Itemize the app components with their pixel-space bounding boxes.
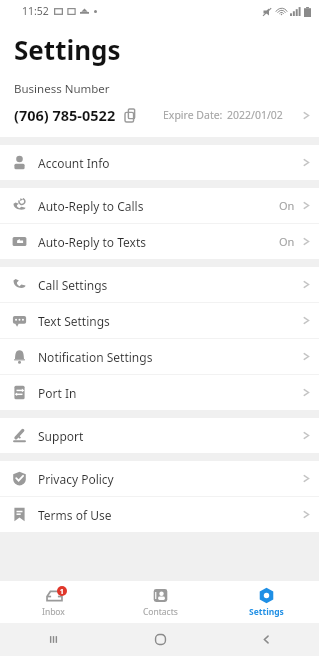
staticText: 11:52 (22, 4, 49, 18)
staticText: Terms of Use (38, 507, 112, 523)
staticText: Business Number (14, 81, 110, 97)
button[interactable]: Privacy Policy (0, 461, 319, 496)
button[interactable]: Text Settings (0, 303, 319, 338)
staticText: Port In (38, 385, 77, 401)
button[interactable]: Recent apps (0, 623, 107, 656)
button[interactable]: Notification Settings (0, 339, 319, 374)
staticText: Support (38, 428, 84, 444)
staticText: Account Info (38, 155, 110, 171)
button[interactable]: Terms of Use (0, 497, 319, 532)
button[interactable]: Auto-Reply to Calls (0, 188, 319, 223)
staticText: Privacy Policy (38, 471, 114, 487)
staticText: Auto-Reply to Texts (38, 234, 146, 250)
staticText: Call Settings (38, 277, 108, 293)
staticText: Auto-Reply to Calls (38, 198, 144, 214)
button[interactable]: Copy number (121, 105, 141, 125)
button[interactable]: Back (213, 623, 319, 656)
button[interactable]: Call Settings (0, 267, 319, 302)
button[interactable]: Home (107, 623, 213, 656)
staticText: Expire Date: (163, 108, 223, 122)
staticText: On (279, 198, 295, 213)
staticText: Notification Settings (38, 349, 153, 365)
button[interactable]: Expire Date: (163, 102, 319, 128)
button[interactable]: Support (0, 418, 319, 453)
staticText: 1 (60, 587, 64, 596)
staticText: Text Settings (38, 313, 110, 329)
staticText: (706) 785-0522 (14, 105, 116, 125)
staticText: Settings (14, 32, 121, 67)
button[interactable]: Contacts (107, 581, 213, 623)
staticText: Contacts (143, 606, 178, 618)
button[interactable]: Settings (213, 581, 319, 623)
button[interactable]: Port In (0, 375, 319, 410)
button[interactable]: Auto-Reply to Texts (0, 224, 319, 259)
staticText: On (279, 234, 295, 249)
staticText: Inbox (42, 606, 65, 618)
staticText: 2022/01/02 (227, 108, 283, 122)
staticText: Settings (249, 606, 284, 618)
button[interactable]: 1 (0, 581, 107, 623)
button[interactable]: Account Info (0, 145, 319, 180)
